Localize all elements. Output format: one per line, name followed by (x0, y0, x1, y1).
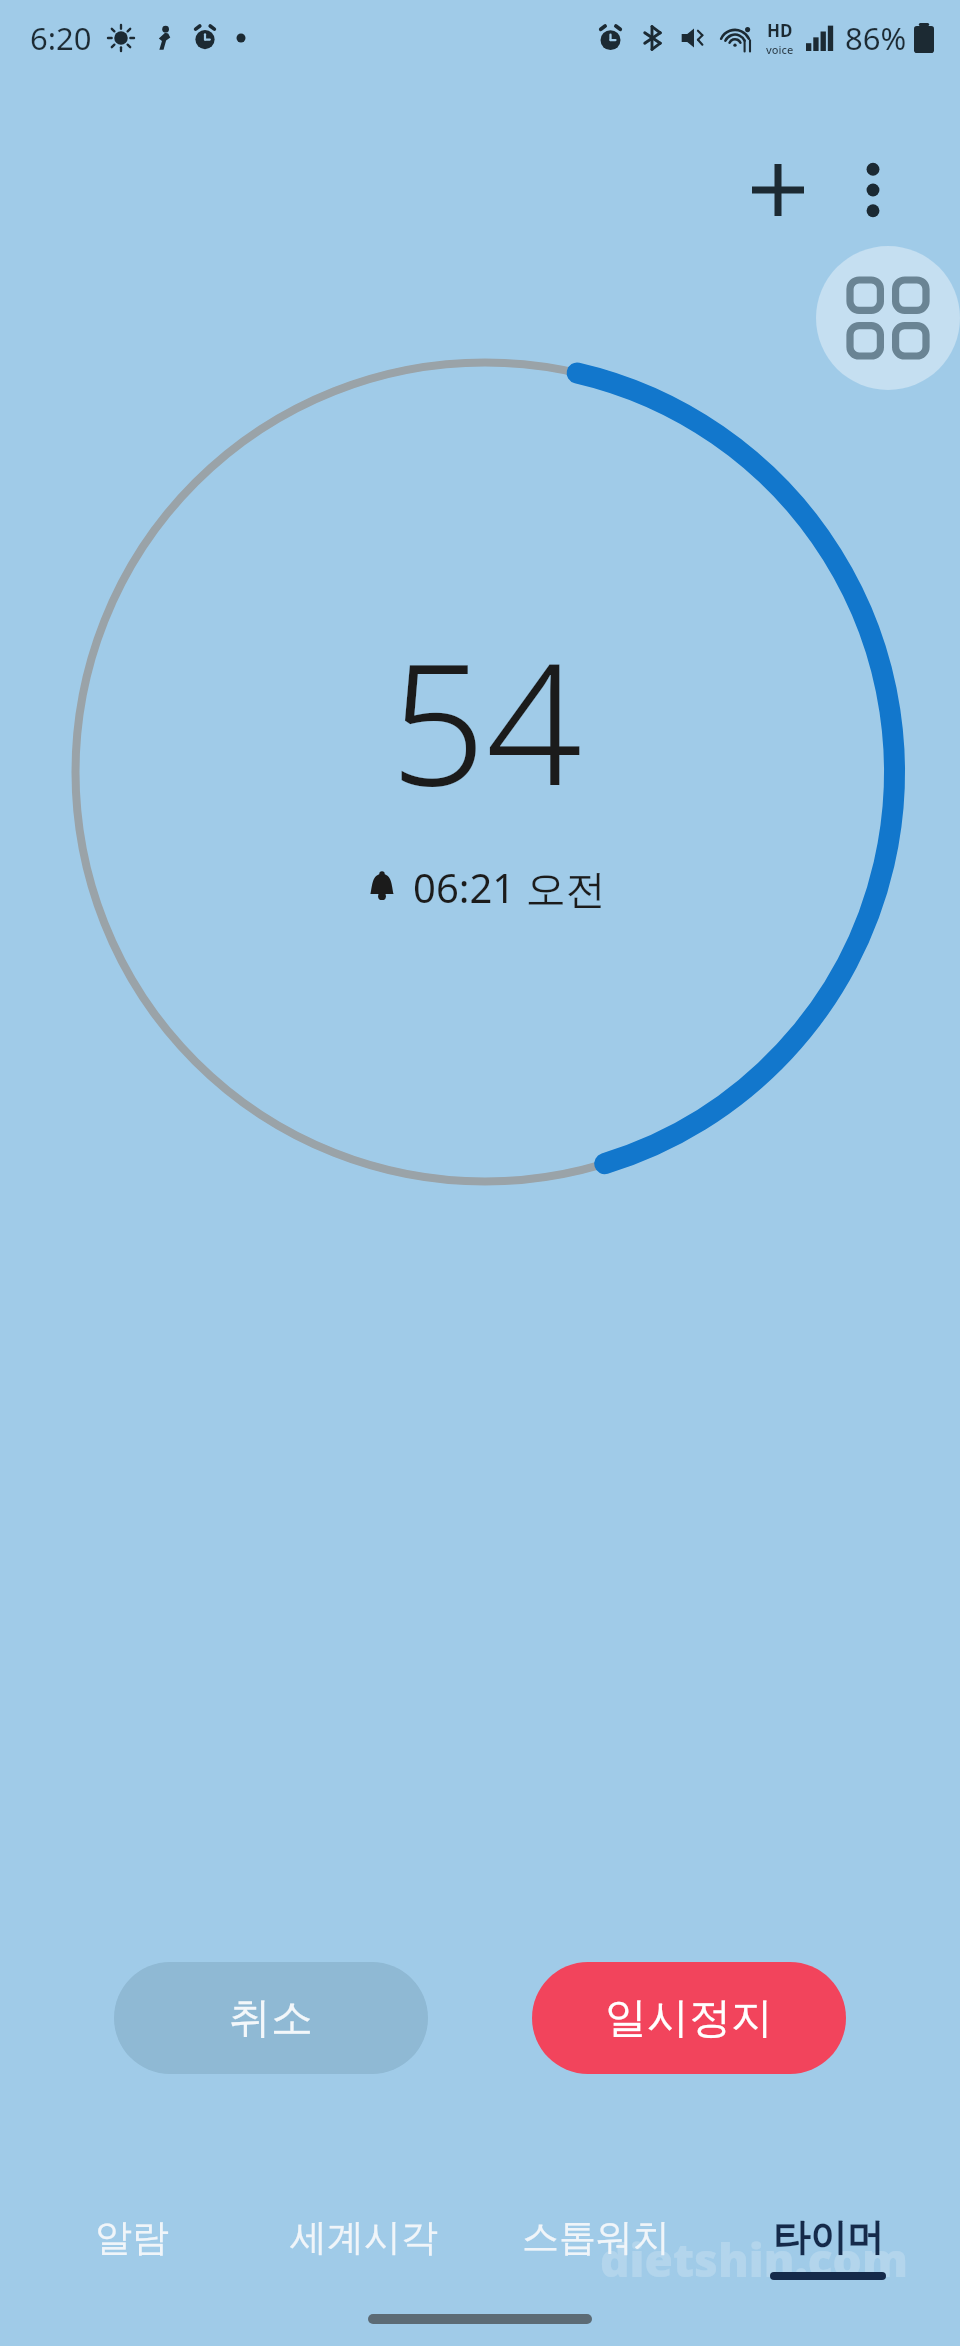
staticText: 일시정지 (605, 1992, 773, 2045)
staticText: 86% (845, 17, 907, 59)
staticText: 6:20 (30, 17, 92, 59)
staticText: 세계시각 (290, 2214, 438, 2261)
button[interactable]: Timer presets (816, 246, 960, 390)
button[interactable]: More options (825, 142, 921, 238)
staticText: HD (767, 19, 793, 42)
button[interactable]: 세계시각 (264, 2202, 464, 2261)
button[interactable]: 스톱워치 (496, 2202, 696, 2261)
staticText: 스톱워치 (522, 2214, 670, 2261)
button[interactable]: 알람 (32, 2202, 232, 2261)
button[interactable]: Add timer (730, 142, 826, 238)
staticText: 54 (390, 605, 582, 834)
staticText: voice (766, 42, 794, 57)
staticText: 06:21 오전 (413, 860, 606, 915)
staticText: 타이머 (773, 2214, 884, 2261)
staticText: dietshin.com (600, 2228, 908, 2291)
button[interactable]: 취소 (114, 1962, 428, 2074)
staticText: 취소 (229, 1992, 313, 2045)
staticText: 알람 (95, 2214, 169, 2261)
button[interactable]: 타이머 (728, 2202, 928, 2280)
button[interactable]: 일시정지 (532, 1962, 846, 2074)
